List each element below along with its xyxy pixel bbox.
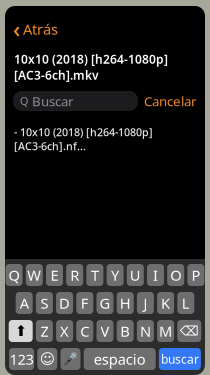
staticText: W [27, 265, 41, 285]
staticText: ☺ [40, 351, 55, 367]
button[interactable]: O [167, 264, 184, 286]
button[interactable]: E [46, 264, 63, 286]
button[interactable]: X [56, 320, 73, 342]
button[interactable]: M [157, 320, 174, 342]
staticText: J [143, 293, 147, 313]
button[interactable]: Delete [177, 320, 201, 342]
staticText: ‹ [13, 14, 20, 44]
button[interactable]: U [127, 264, 144, 286]
staticText: N [140, 321, 151, 341]
staticText: Buscar [32, 92, 74, 110]
button[interactable]: Dictation [60, 348, 80, 370]
staticText: A [20, 293, 29, 313]
button[interactable]: A [16, 292, 33, 314]
button[interactable]: Emoji [37, 348, 57, 370]
button[interactable]: R [66, 264, 83, 286]
button[interactable]: ‹ [5, 6, 58, 44]
button[interactable]: P [187, 264, 204, 286]
button[interactable]: L [177, 292, 194, 314]
staticText: B [120, 321, 130, 341]
button[interactable]: Z [36, 320, 53, 342]
staticText: I [153, 265, 158, 285]
button[interactable]: G [96, 292, 113, 314]
staticText: O [170, 265, 181, 285]
button[interactable]: espacio [84, 348, 156, 370]
button[interactable]: H [117, 292, 134, 314]
staticText: espacio [94, 349, 146, 369]
staticText: Atrás [23, 19, 58, 39]
button[interactable]: S [36, 292, 53, 314]
button[interactable]: 123 [9, 348, 34, 370]
button[interactable]: V [96, 320, 113, 342]
staticText: Q [9, 265, 20, 285]
staticText: U [130, 265, 141, 285]
staticText: D [59, 293, 70, 313]
staticText: Y [111, 265, 119, 285]
staticText: L [182, 293, 190, 313]
staticText: X [60, 321, 69, 341]
staticText: - 10x10 (2018) [h264-1080p][AC3-6ch].nf.… [14, 125, 153, 153]
staticText: R [70, 265, 79, 285]
staticText: H [120, 293, 131, 313]
button[interactable]: Y [107, 264, 124, 286]
staticText: 10x10 (2018) [h264-1080p][AC3-6ch].mkv [14, 51, 168, 83]
button[interactable]: T [86, 264, 103, 286]
button[interactable]: K [157, 292, 174, 314]
button[interactable]: Shift [9, 320, 33, 342]
staticText: 🎤 [63, 352, 78, 366]
staticText: M [159, 321, 172, 341]
staticText: V [100, 321, 109, 341]
button[interactable]: F [76, 292, 93, 314]
staticText: 123 [10, 349, 34, 369]
staticText: C [80, 321, 89, 341]
staticText: F [81, 293, 89, 313]
button[interactable]: I [147, 264, 164, 286]
staticText: K [161, 293, 170, 313]
staticText: buscar [161, 351, 199, 367]
staticText: E [50, 265, 58, 285]
button[interactable]: Q [6, 264, 23, 286]
button[interactable]: N [137, 320, 154, 342]
button[interactable]: C [76, 320, 93, 342]
staticText: Cancelar [144, 92, 197, 110]
staticText: T [91, 265, 99, 285]
staticText: ⌫ [180, 323, 199, 338]
button[interactable]: - 10x10 (2018) [h264-1080p][AC3-6ch].nf.… [5, 111, 205, 153]
button[interactable]: W [26, 264, 43, 286]
staticText: Z [40, 321, 48, 341]
staticText: S [40, 293, 48, 313]
button[interactable]: B [117, 320, 134, 342]
staticText: P [191, 265, 200, 285]
button[interactable]: Cancelar [144, 92, 197, 110]
staticText: G [99, 293, 110, 313]
button[interactable]: J [137, 292, 154, 314]
button[interactable]: buscar [159, 348, 201, 370]
staticText: Q [20, 94, 28, 108]
staticText: ⬆ [15, 323, 27, 339]
button[interactable]: D [56, 292, 73, 314]
